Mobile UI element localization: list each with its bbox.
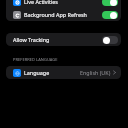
staticText: PREFERRED LANGUAGE	[13, 57, 58, 62]
staticText: English (UK)	[80, 69, 111, 76]
button[interactable]: Language	[6, 66, 121, 79]
button[interactable]: Toggle on	[102, 0, 118, 6]
button[interactable]: Toggle off	[102, 36, 118, 44]
staticText: Language	[24, 69, 50, 76]
button[interactable]: Toggle on	[102, 11, 118, 19]
button[interactable]: Allow Tracking	[6, 33, 121, 46]
staticText: Live Activities	[24, 0, 58, 5]
button[interactable]: Background App Refresh	[6, 8, 121, 21]
staticText: Allow Tracking	[13, 36, 50, 43]
button[interactable]: Live Activities	[6, 0, 121, 8]
staticText: Background App Refresh	[24, 11, 87, 18]
